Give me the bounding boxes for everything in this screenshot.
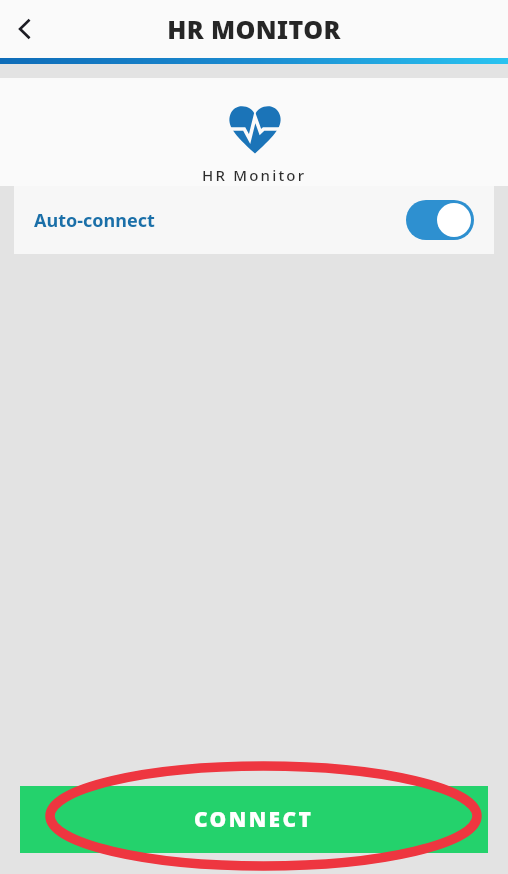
staticText: HR MONITOR: [167, 12, 341, 46]
staticText: HR Monitor: [202, 165, 307, 185]
staticText: Auto-connect: [34, 208, 155, 233]
button[interactable]: CONNECT: [20, 786, 488, 853]
button[interactable]: Auto-connect: [14, 186, 494, 254]
button[interactable]: Back: [0, 4, 50, 54]
staticText: CONNECT: [194, 805, 314, 834]
button[interactable]: Auto-connect toggle: [406, 200, 474, 240]
